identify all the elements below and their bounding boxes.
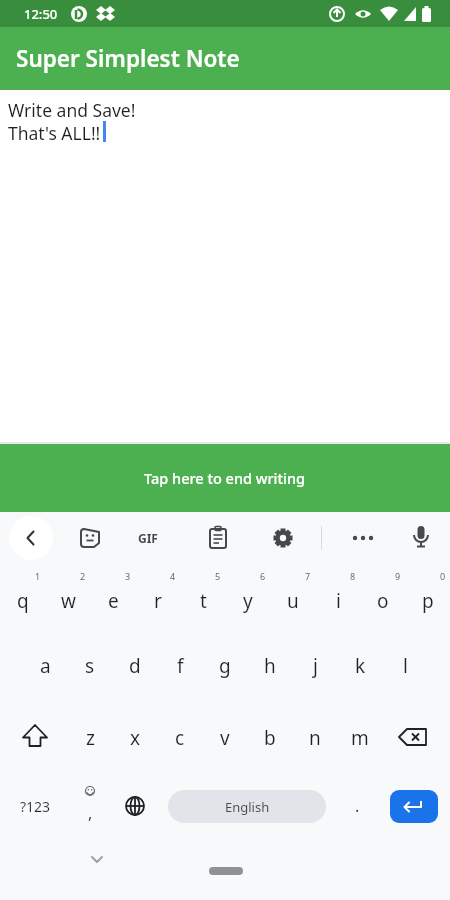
button[interactable]: r [136,575,180,627]
staticText: l [403,653,408,679]
staticText: f [177,653,184,679]
staticText: q [17,588,29,614]
button[interactable] [68,516,112,560]
staticText: h [264,653,276,679]
button[interactable] [341,516,385,560]
button[interactable]: d [113,640,157,692]
button[interactable]: v [203,712,247,764]
button[interactable]: o [361,575,405,627]
button[interactable]: f [158,640,202,692]
button[interactable]: k [338,640,382,692]
button[interactable]: h [248,640,292,692]
staticText: p [422,588,434,614]
staticText: 12:50 [24,5,58,23]
button[interactable]: a [23,640,67,692]
button[interactable]: j [293,640,337,692]
button[interactable]: i [316,575,360,627]
button[interactable]: l [383,640,427,692]
button[interactable] [399,516,443,560]
staticText: b [264,725,276,751]
staticText: s [85,653,95,679]
button[interactable]: y [226,575,270,627]
button[interactable]: x [113,712,157,764]
staticText: , [88,802,93,824]
button[interactable] [391,716,435,760]
staticText: GIF [138,530,158,546]
staticText: y [243,588,253,614]
button[interactable]: c [158,712,202,764]
staticText: Super Simplest Note [16,43,240,74]
button[interactable]: Tap here to end writing [0,444,450,512]
staticText: z [86,725,95,751]
staticText: ?123 [20,797,51,816]
button[interactable]: w [46,575,90,627]
button[interactable]: , [68,774,112,838]
button[interactable]: g [203,640,247,692]
staticText: 3 [125,570,131,582]
staticText: Tap here to end writing [144,468,306,488]
staticText: i [336,588,341,614]
button[interactable] [113,774,157,838]
staticText: c [175,725,185,751]
staticText: r [154,588,162,614]
button[interactable]: English [168,790,326,823]
button[interactable]: ?123 [8,774,63,838]
staticText: 7 [305,570,311,582]
button[interactable] [196,516,240,560]
button[interactable]: z [68,712,112,764]
button[interactable]: e [91,575,135,627]
staticText: a [40,653,51,679]
button[interactable]: . [335,774,379,838]
button[interactable]: GIF [126,516,170,560]
staticText: v [220,725,230,751]
staticText: 9 [395,570,401,582]
staticText: d [129,653,141,679]
staticText: 2 [80,570,86,582]
staticText: English [225,798,270,816]
staticText: 4 [170,570,176,582]
staticText: m [351,725,369,751]
staticText: x [130,725,141,751]
button[interactable]: b [248,712,292,764]
button[interactable]: p [406,575,450,627]
staticText: o [377,588,389,614]
staticText: j [313,653,318,679]
staticText: 8 [350,570,356,582]
button[interactable] [9,516,53,560]
button[interactable]: s [68,640,112,692]
staticText: Write and Save! That's ALL!! [8,98,136,145]
button[interactable]: Write and Save! That's ALL!! [0,90,450,444]
button[interactable] [13,716,57,760]
staticText: g [219,653,231,679]
staticText: 1 [35,570,41,582]
staticText: k [355,653,366,679]
staticText: n [309,725,321,751]
button[interactable] [261,516,305,560]
staticText: 0 [440,570,446,582]
button[interactable]: q [1,575,45,627]
staticText: t [200,588,207,614]
button[interactable]: m [338,712,382,764]
staticText: 6 [260,570,266,582]
button[interactable]: t [181,575,225,627]
staticText: e [108,588,119,614]
button[interactable]: u [271,575,315,627]
staticText: 5 [215,570,221,582]
button[interactable]: n [293,712,337,764]
button[interactable] [390,790,438,823]
staticText: u [287,588,299,614]
staticText: w [61,588,76,614]
staticText: . [355,795,360,817]
